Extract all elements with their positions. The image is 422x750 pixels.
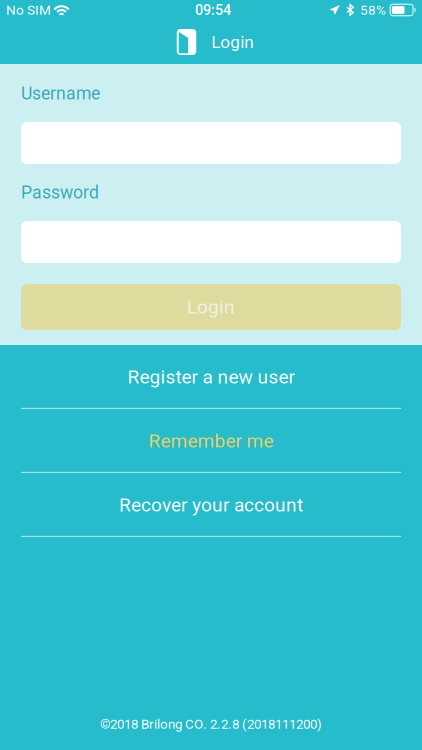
button[interactable]: Recover your account [0,473,422,537]
staticText: Remember me [148,430,273,452]
staticText: Login [187,296,235,318]
staticText: ©2018 Brilong CO. 2.2.8 (2018111200) [100,716,322,732]
staticText: 58% [360,2,386,18]
staticText: Recover your account [119,494,303,516]
button[interactable]: Register a new user [0,345,422,409]
staticText: Register a new user [127,366,294,388]
staticText: Password [21,182,99,203]
button[interactable]: Remember me [0,409,422,473]
button[interactable]: Login [21,284,401,330]
staticText: 09:54 [195,2,231,18]
staticText: No SIM [6,2,51,18]
staticText: Username [21,83,100,104]
staticText: Login [211,32,253,52]
